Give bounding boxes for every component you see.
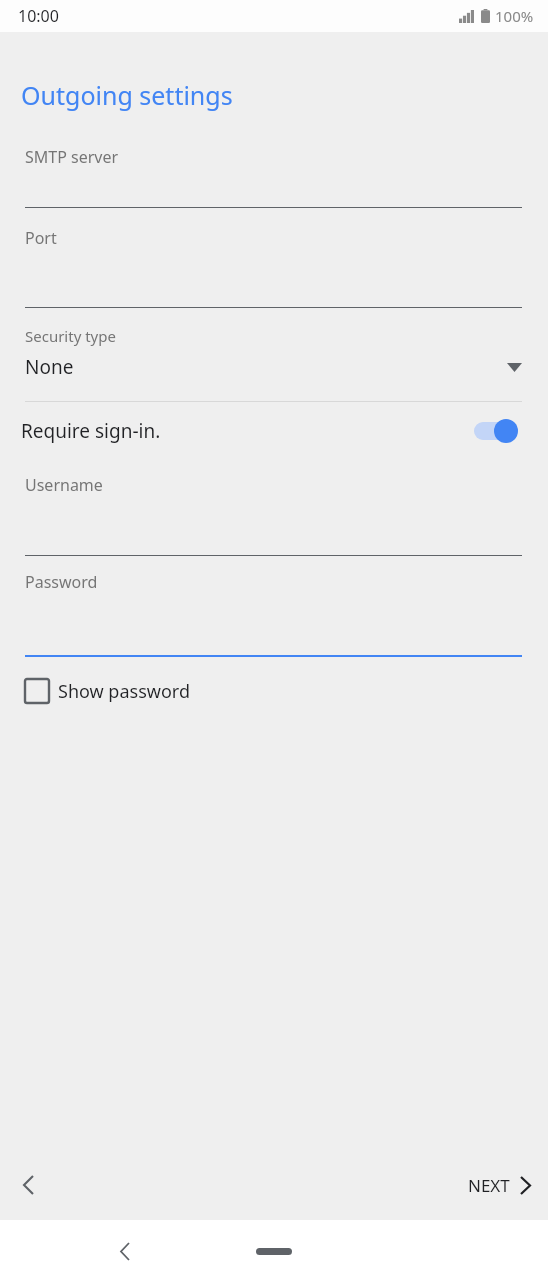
staticText: Require sign-in. — [21, 418, 474, 444]
staticText: Outgoing settings — [21, 78, 233, 112]
button[interactable]: Show password — [0, 669, 548, 713]
staticText: Password — [25, 571, 98, 593]
button[interactable]: Username — [0, 460, 548, 556]
staticText: Port — [25, 227, 57, 249]
staticText: 10:00 — [18, 5, 59, 27]
staticText: 100% — [495, 6, 534, 26]
staticText: Security type — [25, 326, 116, 346]
button[interactable]: NEXT — [450, 1162, 548, 1209]
button[interactable]: Security type — [0, 308, 548, 402]
staticText: Username — [25, 474, 103, 496]
button[interactable]: Password — [0, 556, 548, 657]
button[interactable]: Require sign-in. — [0, 402, 548, 460]
button[interactable]: Port — [0, 208, 548, 308]
staticText: NEXT — [468, 1174, 510, 1197]
staticText: None — [25, 354, 507, 380]
staticText: SMTP server — [25, 146, 119, 168]
button[interactable]: Previous — [0, 1157, 56, 1213]
button[interactable]: SMTP server — [0, 140, 548, 208]
button[interactable]: Home — [256, 1248, 292, 1255]
button[interactable]: Back — [99, 1225, 151, 1277]
staticText: Show password — [58, 679, 190, 704]
